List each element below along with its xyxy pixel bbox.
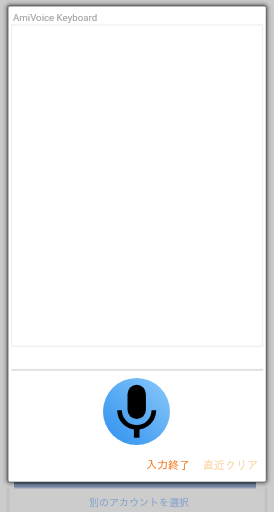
button[interactable]: 別のアカウントを選択	[89, 492, 189, 512]
staticText: 入力終了	[146, 459, 190, 470]
button[interactable]: Start voice input	[103, 378, 170, 445]
staticText: 別のアカウントを選択	[89, 497, 189, 507]
button[interactable]: 直近クリア	[197, 453, 252, 475]
staticText: AmiVoice Keyboard	[13, 12, 98, 23]
staticText: 直近クリア	[203, 459, 258, 470]
button[interactable]: 入力終了	[140, 453, 184, 475]
